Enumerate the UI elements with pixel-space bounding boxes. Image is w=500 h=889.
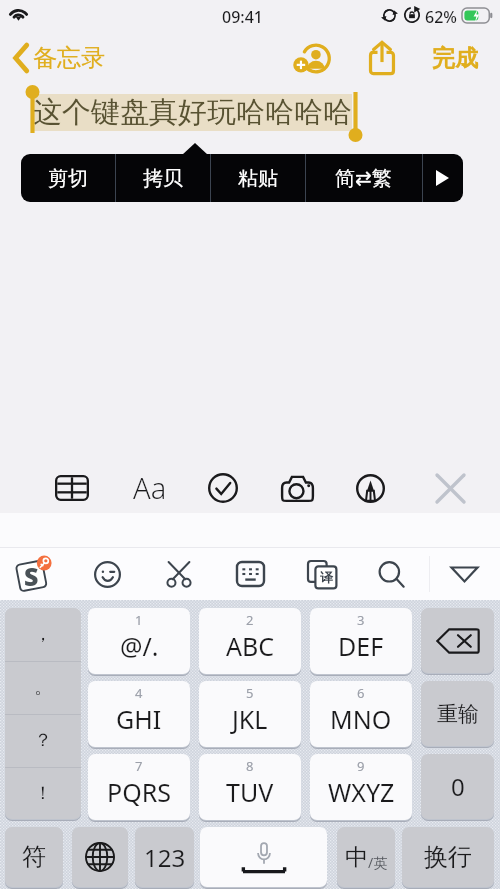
button[interactable]: Collapse <box>442 554 486 594</box>
button[interactable]: 5 <box>199 681 301 747</box>
button[interactable]: Share <box>360 36 404 80</box>
staticText: 7 <box>135 757 143 775</box>
staticText: ！ <box>34 782 52 805</box>
button[interactable]: 。 <box>5 661 81 714</box>
button[interactable]: Space <box>200 827 327 887</box>
button[interactable]: 简⇄繁 <box>305 154 422 202</box>
staticText: 简⇄繁 <box>335 166 392 191</box>
button[interactable]: 换行 <box>402 827 494 887</box>
staticText: 换行 <box>424 842 472 872</box>
button[interactable]: Camera <box>275 468 319 508</box>
staticText: 1 <box>135 611 143 629</box>
staticText: ABC <box>226 629 275 663</box>
staticText: 8 <box>246 757 254 775</box>
staticText: 3 <box>357 611 365 629</box>
button[interactable]: 7 <box>88 754 190 820</box>
staticText: 中 <box>345 843 368 872</box>
staticText: 这个键盘真好玩哈哈哈哈 <box>33 94 352 131</box>
staticText: 0 <box>451 770 465 803</box>
button[interactable]: Translate <box>300 554 344 594</box>
staticText: 符 <box>22 842 46 872</box>
button[interactable]: ？ <box>5 714 81 767</box>
staticText: Aa <box>133 468 167 507</box>
button[interactable]: 中 <box>337 827 395 887</box>
staticText: 62% <box>425 6 457 28</box>
staticText: ， <box>34 623 52 646</box>
staticText: 粘贴 <box>238 166 278 191</box>
button[interactable]: Table <box>50 468 94 508</box>
button[interactable]: Markup <box>348 468 392 508</box>
staticText: 完成 <box>432 44 478 73</box>
staticText: 拷贝 <box>143 166 183 191</box>
button[interactable]: 0 <box>421 754 494 819</box>
staticText: /英 <box>368 853 388 872</box>
staticText: DEF <box>338 629 384 663</box>
button[interactable]: 3 <box>310 608 412 674</box>
button[interactable]: 重输 <box>421 681 494 746</box>
button[interactable] <box>72 827 128 887</box>
button[interactable]: 8 <box>199 754 301 820</box>
button[interactable]: Sogou <box>11 554 55 594</box>
staticText: PQRS <box>107 775 171 809</box>
staticText: 剪切 <box>48 166 88 191</box>
button[interactable]: Format <box>128 468 172 508</box>
staticText: 译 <box>320 569 333 585</box>
button[interactable]: Keyboard <box>228 554 272 594</box>
button[interactable]: 6 <box>310 681 412 747</box>
button[interactable]: Emoji <box>85 554 129 594</box>
staticText: 备忘录 <box>33 43 105 73</box>
button[interactable]: 4 <box>88 681 190 747</box>
button[interactable]: ！ <box>5 767 81 819</box>
button[interactable]: Close <box>428 468 472 508</box>
staticText: JKL <box>232 702 268 736</box>
button[interactable]: 9 <box>310 754 412 820</box>
staticText: 123 <box>144 841 186 874</box>
button[interactable]: Add people <box>289 38 333 78</box>
button[interactable]: Search <box>369 554 413 594</box>
staticText: S <box>24 559 39 593</box>
button[interactable]: 剪切 <box>21 154 115 202</box>
staticText: 9 <box>357 757 365 775</box>
staticText: 5 <box>246 684 254 702</box>
button[interactable]: 1 <box>88 608 190 674</box>
staticText: GHI <box>116 702 162 736</box>
staticText: 4 <box>135 684 143 702</box>
staticText: WXYZ <box>328 775 395 809</box>
button[interactable] <box>421 608 494 673</box>
button[interactable]: 2 <box>199 608 301 674</box>
staticText: MNO <box>330 702 392 736</box>
staticText: ？ <box>34 729 52 752</box>
button[interactable]: Cut <box>157 554 201 594</box>
button[interactable]: 符 <box>5 827 63 887</box>
button[interactable]: 完成 <box>424 39 486 77</box>
staticText: @/. <box>120 629 159 663</box>
button[interactable]: More <box>422 154 463 202</box>
button[interactable]: Checklist <box>201 468 245 508</box>
button[interactable]: 备忘录 <box>6 39 115 77</box>
staticText: 2 <box>246 611 254 629</box>
button[interactable]: 粘贴 <box>210 154 305 202</box>
button[interactable]: ， <box>5 608 81 661</box>
staticText: 。 <box>34 676 52 699</box>
staticText: TUV <box>226 775 274 809</box>
staticText: 6 <box>357 684 365 702</box>
button[interactable]: 123 <box>135 827 194 887</box>
button[interactable]: 拷贝 <box>115 154 210 202</box>
staticText: 09:41 <box>222 6 263 28</box>
staticText: 重输 <box>437 701 479 727</box>
